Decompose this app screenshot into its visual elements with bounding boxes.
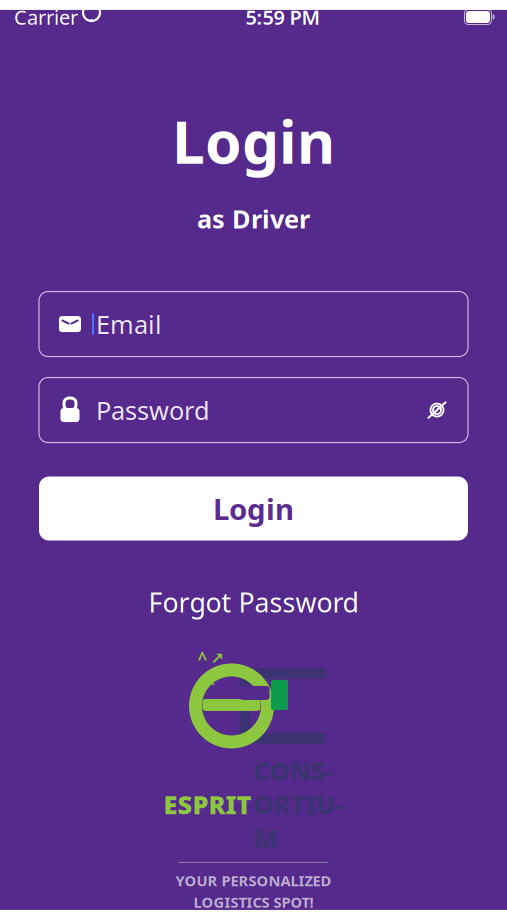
button[interactable]: Email: [39, 291, 468, 356]
button[interactable]: Forgot Password: [134, 576, 372, 628]
staticText: Password: [96, 393, 210, 427]
staticText: ESPRIT: [163, 788, 251, 821]
staticText: as Driver: [197, 202, 310, 235]
staticText: LOGISTICS SPOT!: [193, 892, 313, 912]
staticText: YOUR PERSONALIZED: [175, 871, 331, 890]
staticText: <: [206, 671, 214, 691]
staticText: CONSORTIUM: [253, 754, 343, 855]
staticText: Forgot Password: [148, 584, 358, 620]
staticText: ^: [197, 647, 207, 670]
staticText: ↗: [210, 650, 223, 668]
button[interactable]: Password: [39, 377, 468, 442]
staticText: Login: [172, 102, 335, 180]
staticText: Login: [213, 489, 294, 528]
button[interactable]: Login: [39, 476, 468, 540]
staticText: Carrier: [14, 4, 78, 30]
staticText: Email: [96, 307, 162, 341]
staticText: 5:59 PM: [245, 4, 320, 30]
